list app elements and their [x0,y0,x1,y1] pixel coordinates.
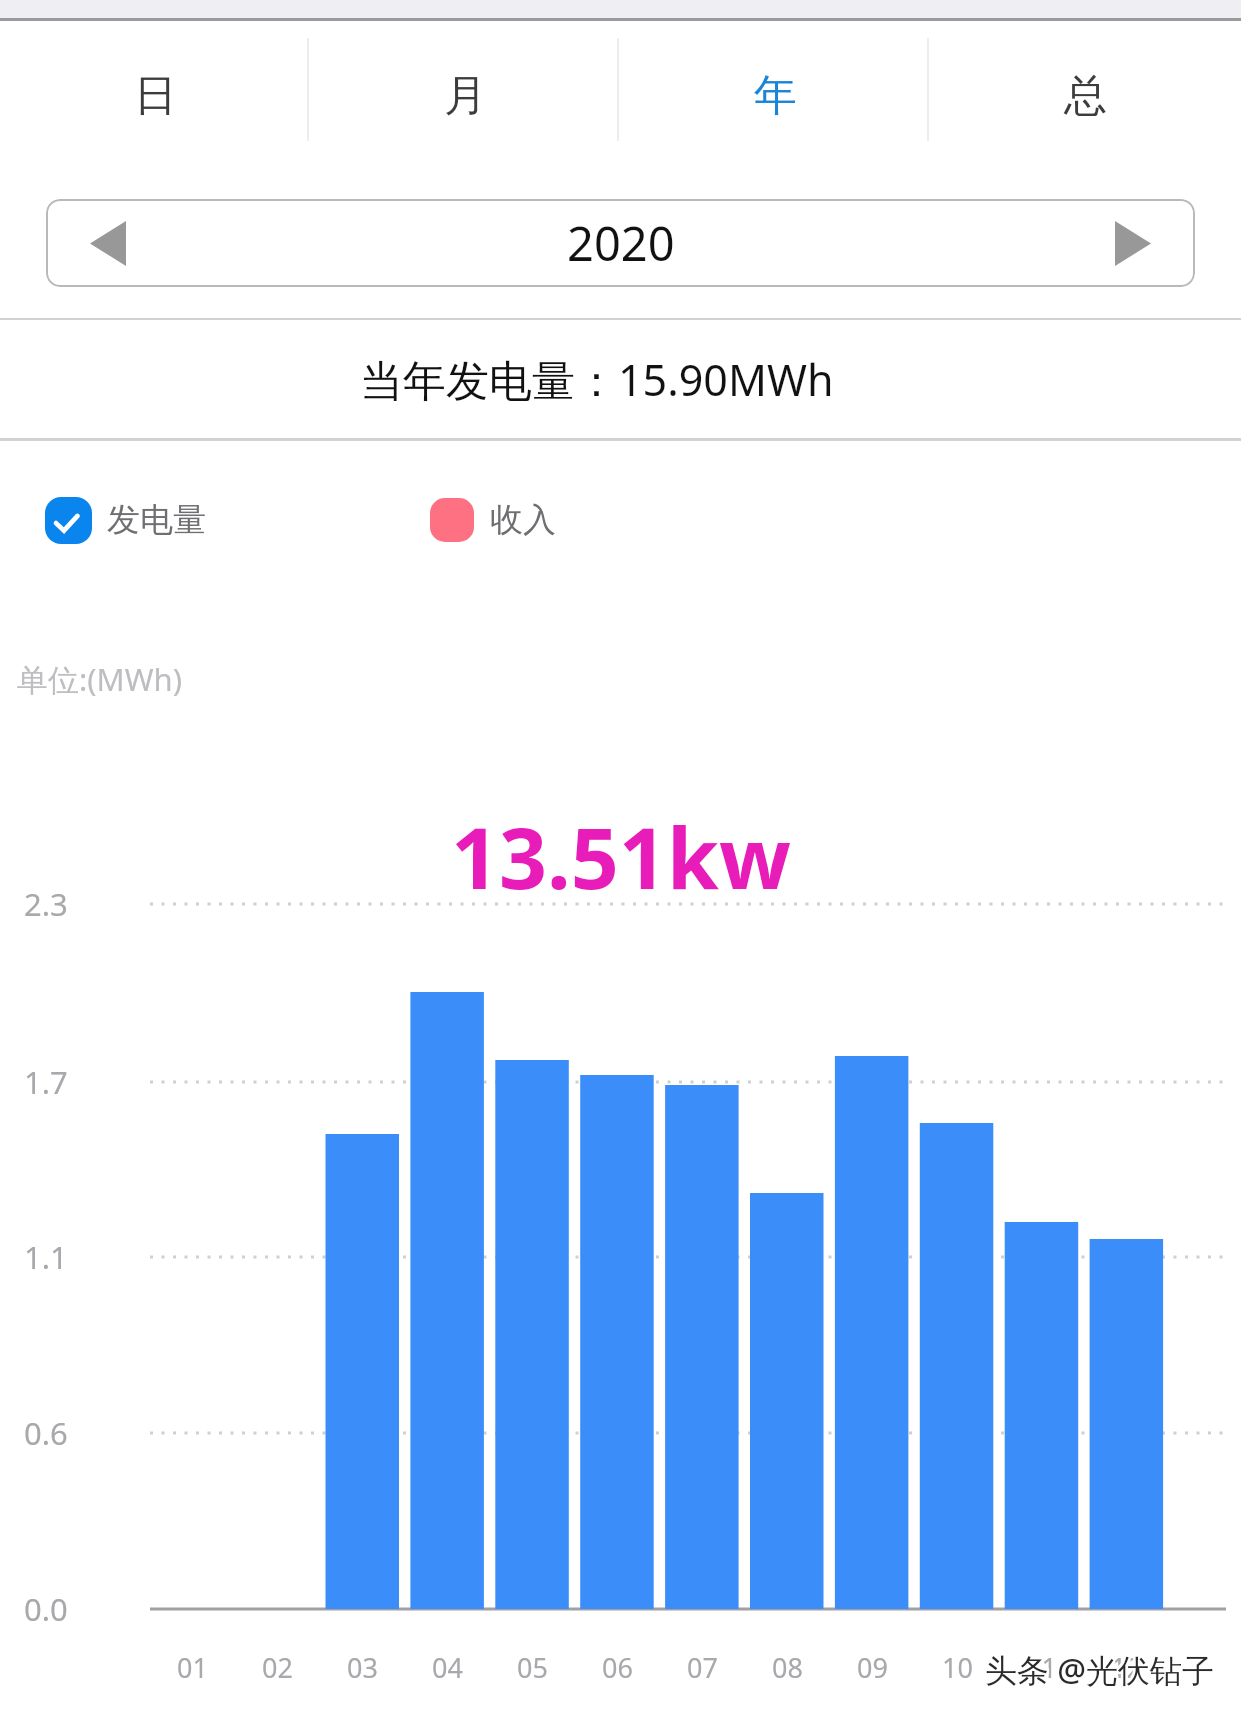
staticText: 06 [602,1649,633,1686]
staticText: 09 [857,1649,888,1686]
staticText: 年 [754,69,797,123]
staticText: 头条 @光伏钻子 [983,1650,1213,1694]
staticText: 11 [1026,1649,1057,1686]
staticText: 月 [444,69,487,123]
staticText: 当年发电量：15.90MWh [360,350,834,409]
staticText: 10 [942,1649,973,1686]
staticText: 头条 @光伏钻子 [987,1650,1217,1694]
staticText: 03 [347,1649,378,1686]
staticText: 2020 [567,211,675,275]
staticText: 01 [177,1649,208,1686]
staticText: 发电量 [107,499,206,541]
staticText: 1.7 [24,1061,68,1103]
staticText: 04 [432,1649,463,1686]
staticText: 2.3 [24,883,68,925]
button[interactable]: 发电量 [45,490,206,550]
button[interactable]: 收入 [430,490,556,550]
button[interactable]: 年 [620,21,930,169]
staticText: 02 [262,1649,293,1686]
button[interactable]: 日 [0,21,310,169]
staticText: 头条 @光伏钻子 [985,1646,1215,1690]
staticText: 头条 @光伏钻子 [985,1650,1215,1694]
staticText: 头条 @光伏钻子 [987,1646,1217,1690]
button[interactable]: Next year [1088,199,1178,287]
staticText: 0.6 [24,1412,68,1454]
staticText: 头条 @光伏钻子 [983,1648,1213,1692]
staticText: 头条 @光伏钻子 [983,1646,1213,1690]
staticText: 收入 [490,499,556,541]
staticText: 0.0 [24,1588,68,1630]
button[interactable]: 总 [930,21,1240,169]
staticText: 12 [1111,1649,1142,1686]
button[interactable]: Previous year [63,199,153,287]
button[interactable]: 月 [310,21,620,169]
staticText: 08 [772,1649,803,1686]
staticText: 头条 @光伏钻子 [985,1648,1215,1692]
staticText: 总 [1064,69,1107,123]
staticText: 1.1 [24,1236,68,1278]
staticText: 13.51kw [451,799,791,913]
staticText: 头条 @光伏钻子 [987,1648,1217,1692]
staticText: 07 [687,1649,718,1686]
staticText: 单位:(MWh) [17,658,183,700]
staticText: 日 [134,69,177,123]
staticText: 05 [517,1649,548,1686]
